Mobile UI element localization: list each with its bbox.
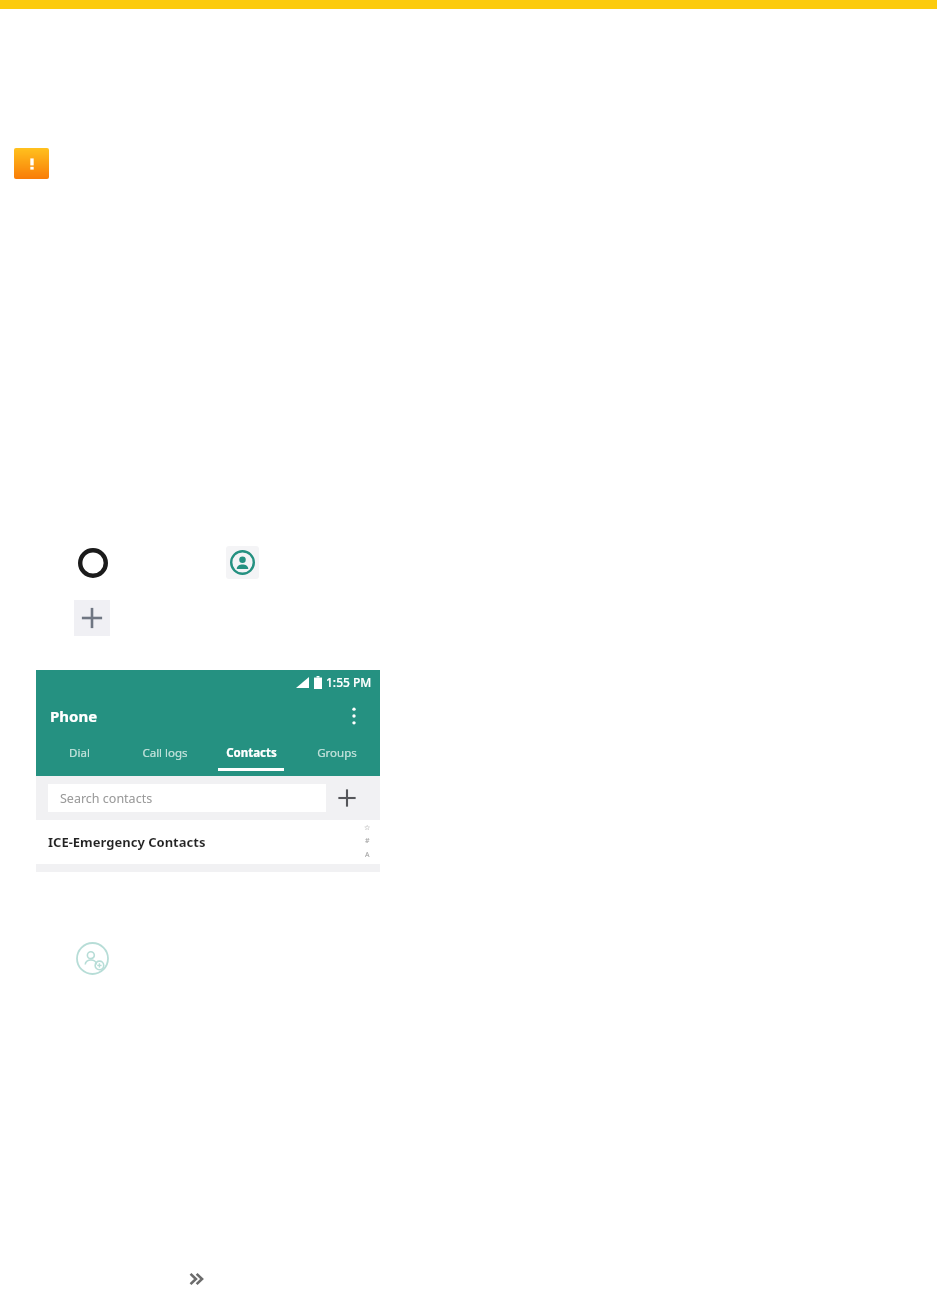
button[interactable]: Dial [36,738,122,776]
staticText: Phone [50,706,98,726]
button[interactable]: Next [184,1268,210,1290]
button[interactable]: Call logs [122,738,208,776]
button[interactable]: Add contact [326,776,368,820]
button[interactable]: More options [340,702,368,730]
staticText: Call logs [142,745,188,761]
button[interactable]: Search contacts [48,784,326,812]
button[interactable]: Add contact [72,938,112,978]
staticText: A [365,850,370,860]
staticText: ICE-Emergency Contacts [48,833,206,851]
button[interactable]: Groups [294,738,380,776]
button[interactable]: Add [74,600,110,636]
staticText: Contacts [226,745,277,761]
other: Warning [14,148,49,179]
staticText: ☆ [364,824,371,832]
staticText: # [365,836,370,846]
button[interactable]: Circle [74,544,111,581]
staticText: Dial [69,745,90,761]
button[interactable]: ICE-Emergency Contacts [36,820,380,864]
button[interactable]: Contacts [208,738,294,776]
staticText: Search contacts [60,790,153,807]
button[interactable]: Contact [226,546,259,579]
staticText: Groups [317,745,357,761]
staticText: 1:55 PM [326,674,372,690]
